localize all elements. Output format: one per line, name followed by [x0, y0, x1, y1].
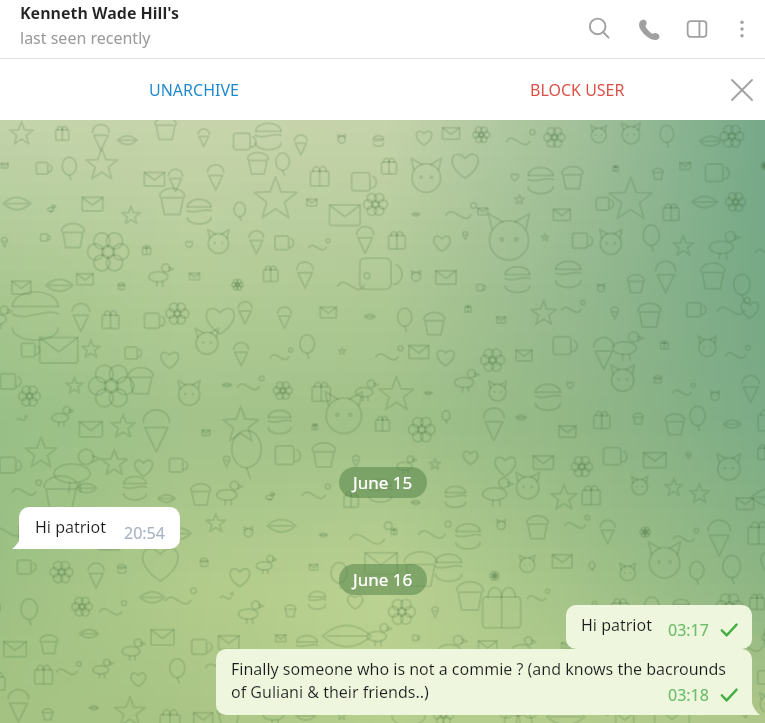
staticText: June 15	[353, 471, 413, 494]
staticText: UNARCHIVE	[149, 79, 239, 101]
button[interactable]: Finally someone who is not a commie ? (a…	[216, 649, 752, 715]
staticText: last seen recently	[20, 27, 151, 49]
button[interactable]: June 15	[339, 467, 427, 498]
staticText: 03:17	[668, 619, 709, 641]
button[interactable]: UNARCHIVE	[0, 59, 382, 120]
button[interactable]: More options	[720, 4, 764, 54]
staticText: 03:18	[668, 684, 709, 706]
button[interactable]: Close	[718, 59, 765, 120]
button[interactable]: Call	[624, 4, 673, 54]
button[interactable]: BLOCK USER	[382, 59, 765, 120]
staticText: June 16	[353, 568, 413, 591]
staticText: Finally someone who is not a commie ? (a…	[231, 658, 738, 703]
staticText: 20:54	[124, 522, 165, 544]
staticText: Hi patriot	[35, 516, 106, 538]
staticText: BLOCK USER	[530, 79, 625, 101]
button[interactable]: Hi patriot	[19, 507, 180, 549]
button[interactable]: Search	[575, 4, 624, 54]
staticText: Kenneth Wade Hill's	[20, 2, 179, 24]
button[interactable]: June 16	[339, 564, 427, 595]
staticText: Hi patriot	[581, 614, 652, 636]
button[interactable]: Split view	[673, 4, 720, 54]
button[interactable]: Hi patriot	[566, 605, 752, 649]
